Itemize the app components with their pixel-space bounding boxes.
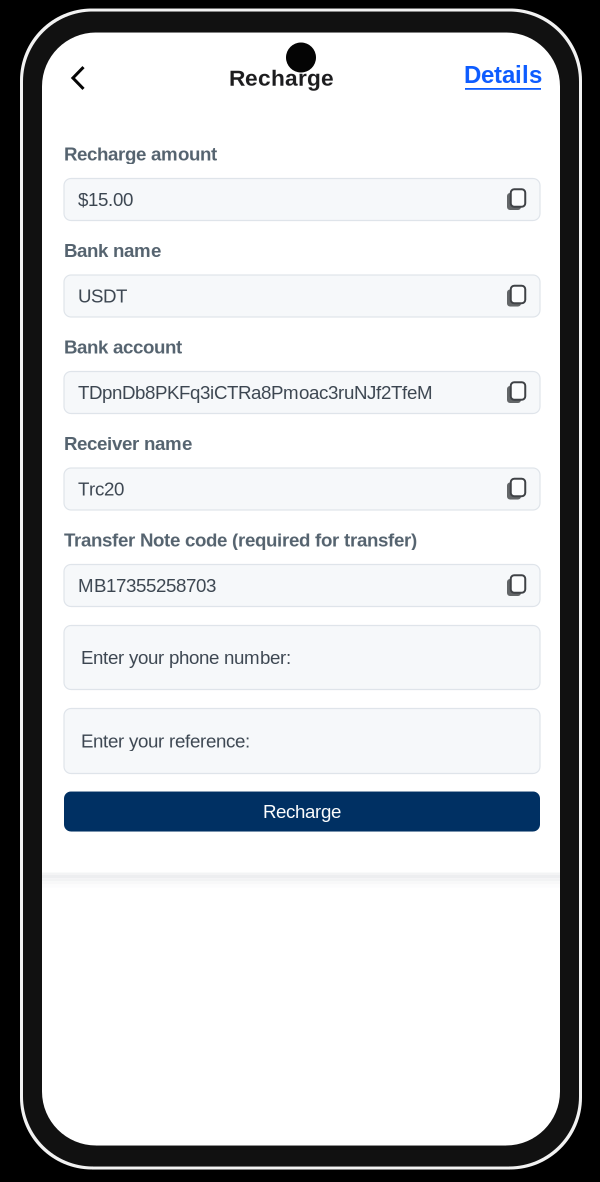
staticText: Transfer Note code (required for transfe… xyxy=(64,530,417,550)
staticText: Enter your phone number: xyxy=(81,647,291,668)
button[interactable]: Back xyxy=(57,56,99,100)
button[interactable]: Details xyxy=(464,56,542,100)
staticText: USDT xyxy=(78,286,127,306)
button[interactable]: Copy Bank name xyxy=(64,275,540,317)
button[interactable]: Enter your phone number: xyxy=(64,625,540,689)
staticText: Bank name xyxy=(64,240,161,261)
staticText: Recharge xyxy=(229,65,334,91)
staticText: Receiver name xyxy=(64,433,192,454)
staticText: TDpnDb8PKFq3iCTRa8Pmoac3ruNJf2TfeM xyxy=(78,382,433,403)
button[interactable]: Recharge xyxy=(64,791,540,831)
staticText: $15.00 xyxy=(78,189,133,210)
staticText: MB17355258703 xyxy=(78,575,216,596)
staticText: Enter your reference: xyxy=(81,731,250,751)
button[interactable]: Copy Receiver name xyxy=(64,468,540,510)
button[interactable]: Copy Transfer Note code (required for tr… xyxy=(64,564,540,606)
staticText: Recharge xyxy=(263,801,341,822)
button[interactable]: Copy Bank account xyxy=(64,371,540,413)
staticText: Bank account xyxy=(64,337,182,357)
staticText: Details xyxy=(464,61,542,88)
button[interactable]: Enter your reference: xyxy=(64,708,540,773)
staticText: Recharge amount xyxy=(64,144,217,164)
staticText: Trc20 xyxy=(78,479,124,499)
button[interactable]: Copy Recharge amount xyxy=(64,178,540,220)
